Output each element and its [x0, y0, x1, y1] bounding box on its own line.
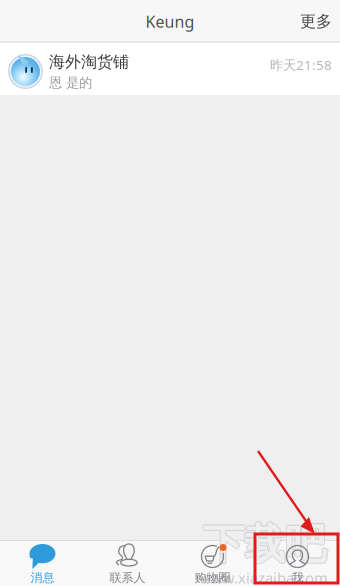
button[interactable]: 消息: [0, 540, 85, 586]
staticText: 购物圈: [194, 570, 230, 585]
staticText: 下载吧: [203, 518, 326, 569]
button[interactable]: 更多: [286, 4, 340, 39]
staticText: 下载吧: [203, 520, 326, 571]
staticText: 我: [291, 570, 303, 585]
staticText: 消息: [30, 570, 54, 585]
staticText: Keung: [145, 11, 194, 32]
staticText: 更多: [300, 12, 332, 31]
staticText: 恩 是的: [49, 75, 92, 91]
staticText: 下载吧: [204, 519, 327, 570]
staticText: 海外淘货铺: [49, 52, 129, 72]
button[interactable]: 购物圈: [170, 540, 255, 586]
staticText: 联系人: [109, 570, 145, 585]
staticText: 下载吧: [203, 519, 326, 570]
button[interactable]: 海外淘货铺: [0, 43, 340, 95]
button[interactable]: 我: [255, 540, 340, 586]
staticText: 昨天21:58: [270, 56, 332, 74]
staticText: www.xiazaiba.com: [199, 568, 328, 586]
button[interactable]: 联系人: [85, 540, 170, 586]
staticText: 下载吧: [202, 519, 325, 570]
